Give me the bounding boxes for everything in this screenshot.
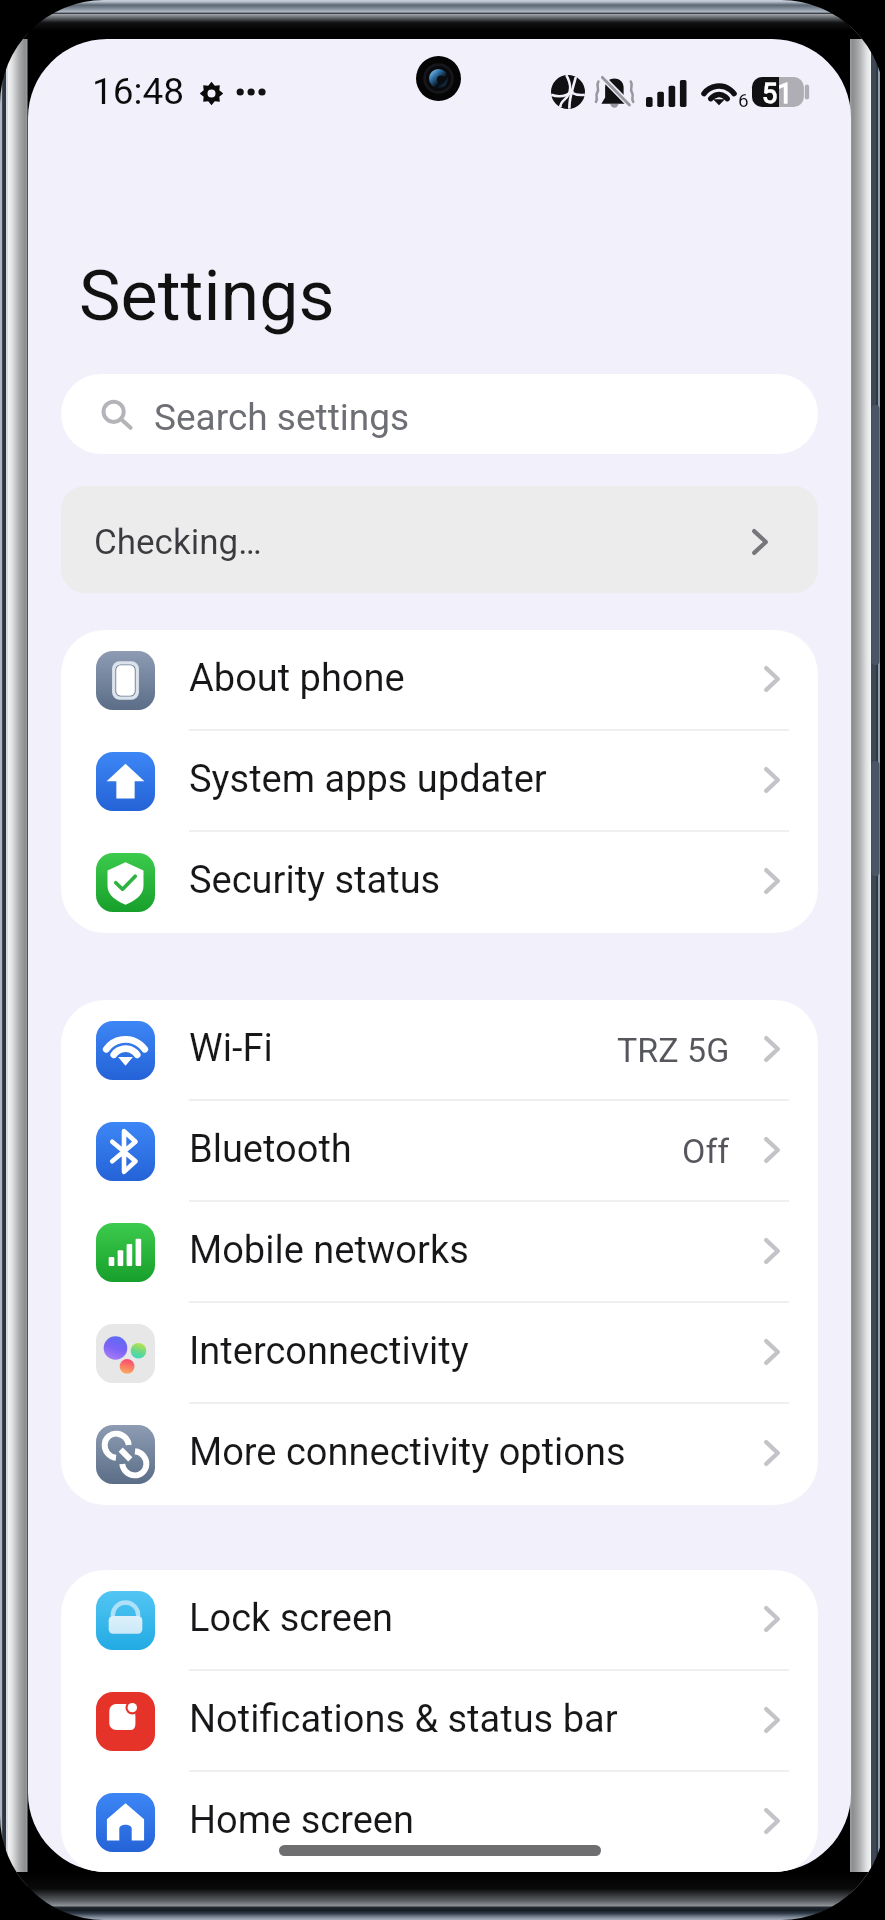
button[interactable]: Wi-Fi: [61, 1000, 818, 1101]
staticText: 51: [762, 78, 793, 108]
staticText: Notifications & status bar: [189, 1697, 618, 1742]
button[interactable]: Lock screen: [61, 1570, 818, 1671]
staticText: Home screen: [189, 1798, 414, 1843]
staticText: System apps updater: [189, 757, 547, 802]
button[interactable]: Security status: [61, 832, 818, 933]
button[interactable]: Bluetooth: [61, 1101, 818, 1202]
button[interactable]: About phone: [61, 630, 818, 731]
staticText: 6: [738, 89, 749, 111]
staticText: Interconnectivity: [189, 1329, 469, 1374]
staticText: Wi-Fi: [189, 1026, 273, 1071]
staticText: Bluetooth: [189, 1127, 352, 1172]
staticText: Checking…: [94, 522, 262, 563]
button[interactable]: Search settings: [61, 374, 818, 454]
button[interactable]: Notifications & status bar: [61, 1671, 818, 1772]
button[interactable]: Home screen: [61, 1772, 818, 1872]
staticText: Settings: [79, 255, 335, 337]
button[interactable]: Checking…: [61, 486, 818, 593]
button[interactable]: More connectivity options: [61, 1404, 818, 1505]
button[interactable]: Mobile networks: [61, 1202, 818, 1303]
staticText: Off: [682, 1131, 730, 1171]
button[interactable]: Interconnectivity: [61, 1303, 818, 1404]
staticText: Mobile networks: [189, 1228, 469, 1273]
staticText: TRZ 5G: [617, 1030, 730, 1070]
button[interactable]: System apps updater: [61, 731, 818, 832]
staticText: Security status: [189, 858, 441, 903]
staticText: Search settings: [154, 396, 410, 439]
staticText: About phone: [189, 656, 405, 701]
staticText: Lock screen: [189, 1596, 394, 1641]
staticText: More connectivity options: [189, 1430, 626, 1475]
staticText: 16:48: [92, 70, 185, 113]
